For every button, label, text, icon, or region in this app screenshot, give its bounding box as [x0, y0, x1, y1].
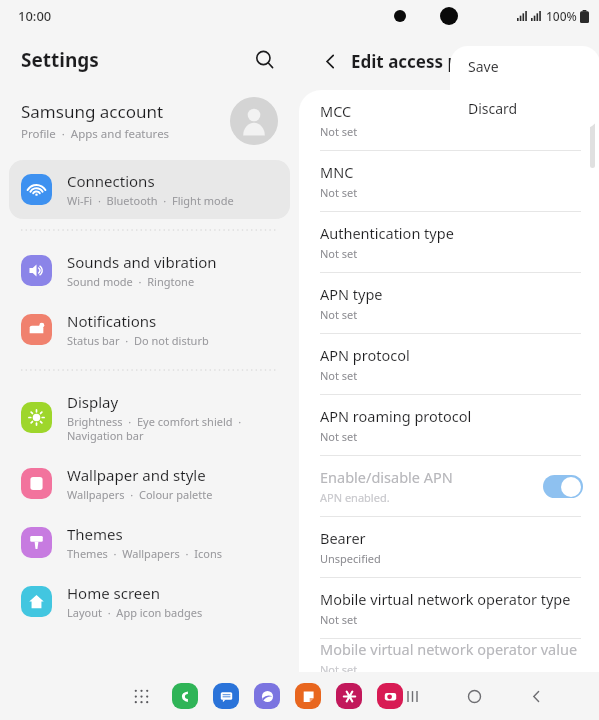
button[interactable]: APN type [299, 273, 599, 333]
button[interactable]: Bearer [299, 517, 599, 577]
staticText: Not set [320, 429, 358, 444]
button[interactable]: Sounds and vibration [9, 241, 290, 300]
staticText: Home screen [67, 583, 161, 603]
button[interactable]: Back [313, 44, 347, 78]
button[interactable]: Authentication type [299, 212, 599, 272]
staticText: Samsung account [21, 100, 164, 123]
staticText: Themes · Wallpapers · Icons [67, 546, 222, 561]
staticText: 10:00 [18, 7, 52, 25]
staticText: Profile · Apps and features [21, 126, 170, 142]
staticText: Mobile virtual network operator type [320, 589, 571, 609]
button[interactable]: internet [254, 683, 280, 709]
staticText: Mobile virtual network operator value [320, 639, 578, 659]
staticText: Connections [67, 171, 155, 191]
button[interactable]: Search [247, 42, 283, 78]
staticText: Brightness · Eye comfort shield · Naviga… [67, 414, 242, 443]
button[interactable]: Display [9, 381, 290, 454]
button[interactable]: Notifications [9, 300, 290, 359]
staticText: Layout · App icon badges [67, 605, 203, 620]
staticText: Themes [67, 524, 123, 544]
button[interactable]: Connections [9, 160, 290, 219]
button[interactable]: Apps [125, 680, 157, 712]
button[interactable]: Recents [395, 679, 429, 713]
button[interactable]: Home screen [9, 572, 290, 631]
staticText: Notifications [67, 311, 157, 331]
button[interactable]: Home [457, 679, 491, 713]
staticText: APN type [320, 284, 383, 304]
staticText: Not set [320, 185, 358, 200]
staticText: Bearer [320, 528, 366, 548]
staticText: Display [67, 392, 119, 412]
staticText: MCC [320, 101, 352, 121]
staticText: Wallpaper and style [67, 465, 206, 485]
staticText: Not set [320, 612, 358, 627]
button[interactable]: Themes [9, 513, 290, 572]
button[interactable]: Back [519, 679, 553, 713]
button[interactable]: Save [450, 46, 599, 87]
button[interactable]: Enable/disable APN [299, 456, 599, 516]
staticText: Not set [320, 246, 358, 261]
button[interactable]: Discard [450, 87, 599, 129]
button[interactable]: Samsung account [0, 88, 299, 154]
staticText: Discard [468, 99, 518, 118]
button[interactable]: star [336, 683, 362, 709]
button[interactable]: APN protocol [299, 334, 599, 394]
staticText: Enable/disable APN [320, 467, 453, 487]
button[interactable]: APN roaming protocol [299, 395, 599, 455]
staticText: Not set [320, 662, 358, 672]
staticText: Wi-Fi · Bluetooth · Flight mode [67, 193, 234, 208]
button[interactable]: notes [295, 683, 321, 709]
button[interactable]: MNC [299, 151, 599, 211]
button[interactable]: MCC [299, 90, 599, 150]
button[interactable]: Mobile virtual network operator type [299, 578, 599, 638]
staticText: Not set [320, 368, 358, 383]
staticText: 100% [546, 8, 577, 24]
button[interactable]: camera [377, 683, 403, 709]
staticText: Authentication type [320, 223, 454, 243]
button[interactable]: Enable APN toggle [543, 475, 583, 498]
button[interactable]: Wallpaper and style [9, 454, 290, 513]
staticText: Unspecified [320, 551, 381, 566]
staticText: MNC [320, 162, 354, 182]
staticText: Wallpapers · Colour palette [67, 487, 213, 502]
staticText: APN enabled. [320, 490, 390, 505]
button[interactable]: phone [172, 683, 198, 709]
staticText: Not set [320, 307, 358, 322]
staticText: APN protocol [320, 345, 410, 365]
staticText: Sounds and vibration [67, 252, 217, 272]
staticText: Sound mode · Ringtone [67, 274, 195, 289]
staticText: Settings [21, 47, 99, 73]
staticText: Not set [320, 124, 358, 139]
button[interactable]: msg [213, 683, 239, 709]
button[interactable]: Mobile virtual network operator value [299, 639, 599, 672]
staticText: Save [468, 57, 499, 76]
staticText: Status bar · Do not disturb [67, 333, 209, 348]
staticText: APN roaming protocol [320, 406, 472, 426]
staticText: Edit access point name [351, 50, 545, 73]
